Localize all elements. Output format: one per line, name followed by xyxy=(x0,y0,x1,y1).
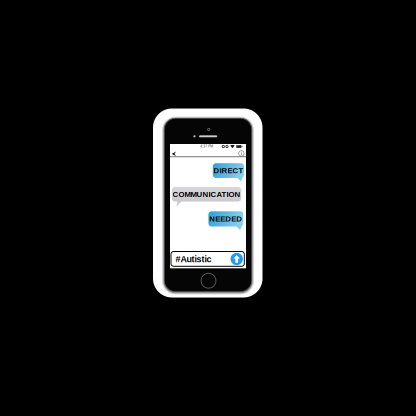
staticText: COMMUNICATION xyxy=(173,190,241,198)
staticText: 4:37 PM xyxy=(200,144,213,148)
button[interactable]: NEEDED xyxy=(208,211,243,232)
button[interactable]: Send xyxy=(230,253,243,265)
button[interactable]: Back xyxy=(170,150,178,158)
button[interactable]: Conversation details xyxy=(237,149,245,157)
staticText: #Autistic xyxy=(175,254,211,264)
staticText: DIRECT xyxy=(213,166,243,175)
button[interactable]: COMMUNICATION xyxy=(172,187,241,207)
staticText: NEEDED xyxy=(209,214,242,223)
button[interactable]: DIRECT xyxy=(213,163,244,184)
